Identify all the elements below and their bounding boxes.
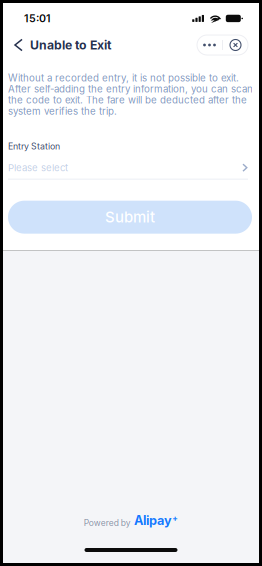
button[interactable]: Submit [8, 201, 252, 234]
staticText: + [172, 513, 178, 523]
staticText: 15:01 [24, 12, 51, 25]
staticText: Unable to Exit [30, 38, 111, 52]
staticText: Submit [105, 208, 155, 226]
button[interactable]: More options [197, 35, 222, 54]
staticText: the code to exit. The fare will be deduc… [8, 94, 247, 106]
staticText: Please select [8, 162, 68, 173]
staticText: Alipay [134, 513, 172, 528]
staticText: Without a recorded entry, it is not poss… [8, 72, 239, 84]
staticText: system verifies the trip. [8, 105, 117, 117]
button[interactable]: Close [223, 35, 248, 54]
staticText: Entry Station [8, 141, 60, 152]
staticText: After self-adding the entry information,… [8, 83, 253, 95]
staticText: Powered by [84, 518, 131, 528]
button[interactable]: Please select [8, 157, 248, 179]
button[interactable]: Back [7, 31, 30, 59]
